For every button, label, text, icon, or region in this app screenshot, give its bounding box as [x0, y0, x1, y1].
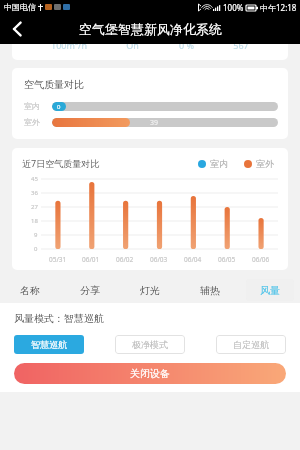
staticText: 06/06 [252, 255, 270, 264]
staticText: 极净模式 [132, 339, 168, 350]
staticText: 中午12:18 [260, 2, 297, 13]
staticText: 9 [34, 231, 38, 239]
staticText: 0 % [179, 44, 194, 51]
staticText: On [126, 44, 139, 51]
staticText: 18 [31, 217, 38, 225]
staticText: 风量模式：智慧巡航 [14, 312, 104, 325]
staticText: 100m³/h [51, 44, 87, 51]
staticText: 关闭设备 [130, 367, 170, 380]
staticText: 智慧巡航 [31, 339, 67, 350]
staticText: 空气堡智慧新风净化系统 [79, 21, 222, 37]
button[interactable]: 名称 [0, 277, 60, 303]
staticText: 灯光 [140, 284, 160, 297]
button[interactable]: 100m³/h [12, 44, 288, 60]
staticText: 567 [233, 44, 249, 51]
staticText: 风量 [260, 284, 280, 297]
staticText: 100% [223, 2, 244, 13]
staticText: 中国电信 [4, 2, 36, 12]
button[interactable]: 近7日空气质量对比 [12, 148, 288, 270]
staticText: 06/01 [82, 255, 100, 264]
staticText: 室内 [210, 158, 228, 169]
staticText: 36 [31, 189, 38, 197]
button[interactable]: 空气质量对比 [12, 68, 288, 139]
button[interactable]: 关闭设备 [14, 363, 286, 384]
staticText: 05/31 [49, 255, 67, 264]
button[interactable]: 辅热 [180, 277, 240, 303]
button[interactable]: 风量 [246, 279, 294, 301]
staticText: 名称 [20, 284, 40, 297]
staticText: 自定巡航 [233, 339, 269, 350]
staticText: 06/04 [184, 255, 202, 264]
button[interactable]: 智慧巡航 [14, 335, 84, 354]
staticText: 室外 [24, 117, 52, 127]
staticText: 39 [150, 118, 159, 127]
staticText: 45 [31, 175, 38, 183]
staticText: 近7日空气质量对比 [22, 157, 100, 169]
staticText: 室内 [24, 101, 52, 111]
staticText: 0 [57, 103, 61, 111]
button[interactable]: Back [0, 14, 34, 44]
button[interactable]: 极净模式 [115, 335, 185, 354]
staticText: 分享 [80, 284, 100, 297]
button[interactable]: 灯光 [120, 277, 180, 303]
button[interactable]: 分享 [60, 277, 120, 303]
button[interactable]: 自定巡航 [216, 335, 286, 354]
staticText: 06/02 [116, 255, 134, 264]
staticText: 室外 [256, 158, 274, 169]
staticText: 空气质量对比 [24, 78, 84, 91]
staticText: 0 [34, 245, 38, 253]
staticText: 辅热 [200, 284, 220, 297]
staticText: 06/03 [150, 255, 168, 264]
staticText: 06/05 [218, 255, 236, 264]
staticText: 27 [31, 203, 38, 211]
